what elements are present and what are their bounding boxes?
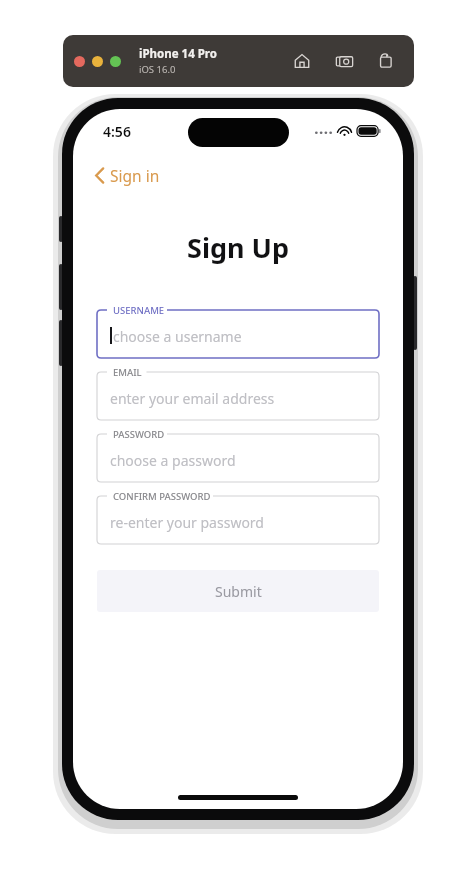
button[interactable] <box>110 56 121 67</box>
staticText: iOS 16.0 <box>139 63 176 76</box>
staticText: Submit <box>215 582 262 601</box>
staticText: choose a password <box>110 451 236 470</box>
button[interactable] <box>92 56 103 67</box>
button[interactable]: Home <box>288 47 316 75</box>
button[interactable]: PASSWORD <box>97 434 379 482</box>
button[interactable]: CONFIRM PASSWORD <box>97 496 379 544</box>
staticText: re-enter your password <box>110 513 264 532</box>
button[interactable]: EMAIL <box>97 372 379 420</box>
button[interactable]: Rotate <box>372 47 400 75</box>
button[interactable]: Screenshot <box>330 47 358 75</box>
button[interactable]: Sign in <box>89 161 166 190</box>
button[interactable] <box>74 56 85 67</box>
staticText: EMAIL <box>113 366 142 379</box>
button[interactable]: Submit <box>97 570 379 612</box>
staticText: iPhone 14 Pro <box>139 46 217 62</box>
staticText: Sign in <box>110 165 160 186</box>
staticText: PASSWORD <box>113 428 165 441</box>
staticText: 4:56 <box>103 122 131 141</box>
staticText: CONFIRM PASSWORD <box>113 490 211 503</box>
staticText: Sign Up <box>187 229 290 266</box>
staticText: enter your email address <box>110 389 275 408</box>
staticText: USERNAME <box>113 304 165 317</box>
button[interactable]: USERNAME <box>97 310 379 358</box>
staticText: choose a username <box>113 327 242 346</box>
